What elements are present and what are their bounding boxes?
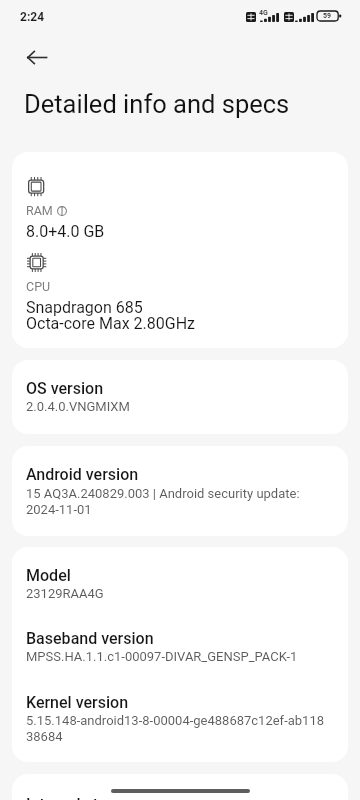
staticText: 5.15.148-android13-8-00004-ge488687c12ef…	[26, 713, 325, 744]
button[interactable]: RAM and CPU	[12, 152, 348, 348]
staticText: Detailed info and specs	[24, 89, 290, 119]
staticText: 23129RAA4G	[26, 586, 104, 601]
staticText: 8.0+4.0 GB	[26, 222, 105, 241]
staticText: Android version	[26, 465, 139, 484]
button[interactable]: OS version	[12, 360, 348, 434]
staticText: MPSS.HA.1.1.c1-00097-DIVAR_GENSP_PACK-1	[26, 649, 298, 664]
staticText: 2.0.4.0.VNGMIXM	[26, 399, 130, 414]
button[interactable]: Android version	[12, 446, 348, 536]
staticText: Octa-core Max 2.80GHz	[26, 314, 195, 333]
staticText: Internal storage	[26, 795, 139, 800]
staticText: OS version	[26, 379, 104, 398]
staticText: Snapdragon 685	[26, 298, 143, 317]
staticText: 4G	[259, 9, 268, 17]
button[interactable]: Back	[14, 35, 60, 79]
button[interactable]: Internal storage	[12, 774, 348, 800]
staticText: Model	[26, 566, 71, 585]
button[interactable]: Model, baseband and kernel version	[12, 547, 348, 762]
staticText: RAM	[26, 203, 53, 218]
staticText: 2:24	[20, 10, 45, 24]
staticText: Baseband version	[26, 629, 154, 648]
staticText: CPU	[26, 279, 51, 294]
staticText: Kernel version	[26, 693, 129, 712]
staticText: 59	[323, 12, 332, 20]
staticText: 15 AQ3A.240829.003 | Android security up…	[26, 486, 300, 517]
